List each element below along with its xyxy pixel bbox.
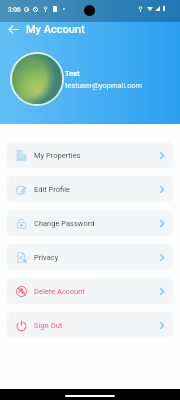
staticText: My Properties [34, 151, 81, 160]
button[interactable]: Sign Out [7, 312, 173, 338]
button[interactable]: Privacy [7, 244, 173, 270]
button[interactable]: Back [5, 22, 21, 36]
staticText: Change Password [34, 219, 95, 228]
staticText: My Account [26, 23, 85, 36]
staticText: Privacy [34, 253, 59, 262]
staticText: 3:06 [8, 6, 21, 14]
button[interactable]: My Properties [7, 142, 173, 168]
button[interactable]: Change Password [7, 210, 173, 236]
staticText: Delete Account [34, 287, 85, 296]
staticText: Sign Out [34, 321, 63, 330]
button[interactable]: Edit Profile [7, 176, 173, 202]
button[interactable]: Delete Account [7, 278, 173, 304]
staticText: Edit Profile [34, 185, 70, 194]
staticText: Test [65, 69, 80, 78]
staticText: testuser@yopmall.com [65, 81, 143, 90]
